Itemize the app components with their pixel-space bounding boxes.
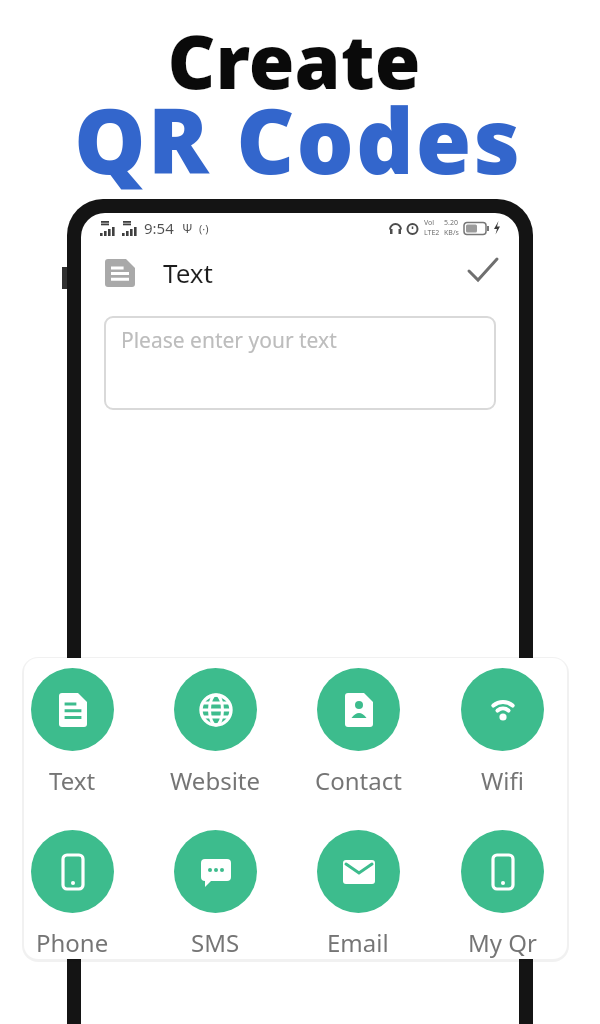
staticText: Email xyxy=(327,926,389,959)
staticText: 9:54 xyxy=(144,218,174,238)
button[interactable]: Please enter your text xyxy=(105,317,495,409)
staticText: (·) xyxy=(199,221,209,236)
button[interactable]: My Qr xyxy=(442,830,562,959)
staticText: Wifi xyxy=(481,764,524,797)
button[interactable]: Wifi xyxy=(442,668,562,797)
button[interactable]: Text xyxy=(12,668,132,797)
staticText: KB/s xyxy=(444,228,459,238)
button[interactable]: Contact xyxy=(298,668,418,797)
staticText: Please enter your text xyxy=(121,326,337,355)
staticText: Ψ xyxy=(182,219,193,237)
staticText: Text xyxy=(163,255,213,290)
staticText: LTE2 xyxy=(424,228,440,238)
staticText: 5.20 xyxy=(444,218,458,228)
staticText: My Qr xyxy=(468,926,537,959)
staticText: Phone xyxy=(36,926,109,959)
button[interactable] xyxy=(467,254,499,286)
staticText: QR Codes xyxy=(0,78,598,201)
staticText: SMS xyxy=(191,926,240,959)
button[interactable]: Website xyxy=(155,668,275,797)
staticText: Text xyxy=(49,764,96,797)
staticText: Contact xyxy=(315,764,402,797)
staticText: Vol xyxy=(424,218,435,228)
staticText: Website xyxy=(170,764,261,797)
button[interactable] xyxy=(103,257,137,291)
button[interactable]: Email xyxy=(298,830,418,959)
staticText: Create xyxy=(0,10,594,111)
button[interactable]: Phone xyxy=(12,830,132,959)
button[interactable]: SMS xyxy=(155,830,275,959)
